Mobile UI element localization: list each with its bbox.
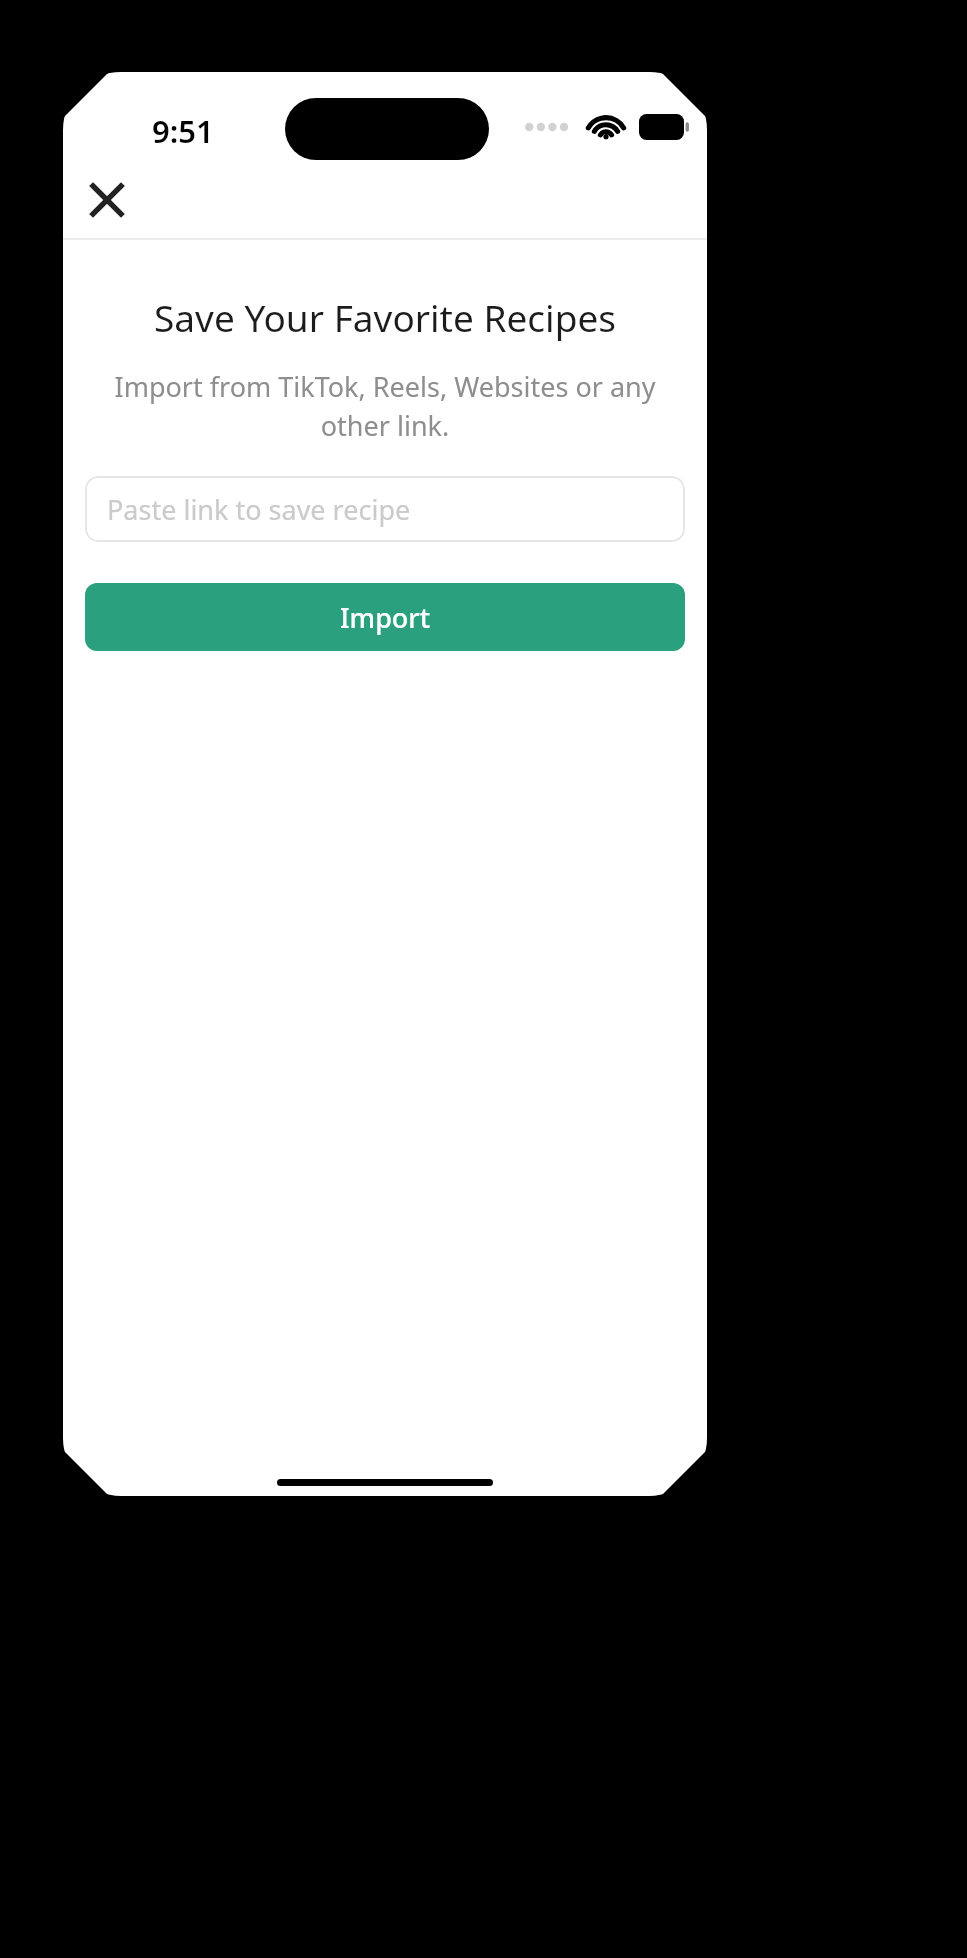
staticText: Paste link to save recipe: [107, 491, 411, 528]
button[interactable]: Close: [71, 164, 143, 236]
staticText: Import: [340, 599, 431, 636]
staticText: 9:51: [152, 110, 214, 152]
button[interactable]: Import: [85, 583, 685, 651]
staticText: Import from TikTok, Reels, Websites or a…: [85, 368, 685, 444]
staticText: Save Your Favorite Recipes: [154, 292, 616, 342]
button[interactable]: Paste link to save recipe: [85, 476, 685, 542]
